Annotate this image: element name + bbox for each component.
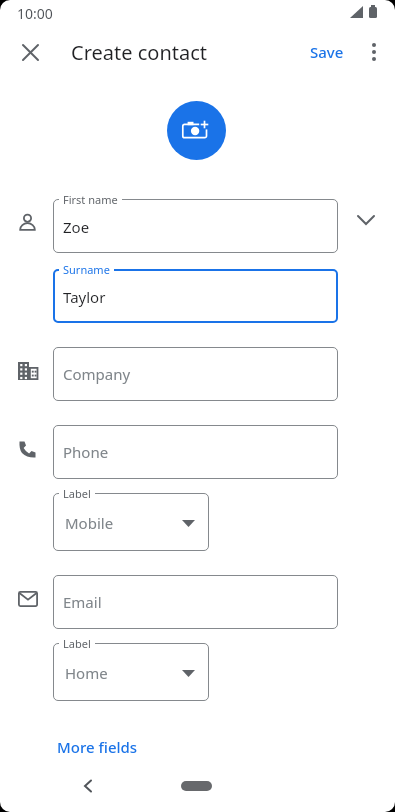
- button[interactable]: [72, 771, 102, 801]
- button[interactable]: [181, 781, 212, 791]
- staticText: Save: [310, 42, 344, 62]
- button[interactable]: [53, 269, 338, 323]
- button[interactable]: [14, 36, 46, 68]
- staticText: Zoe: [63, 217, 90, 237]
- staticText: First name: [63, 192, 118, 207]
- staticText: Create contact: [71, 39, 208, 66]
- staticText: Taylor: [63, 287, 106, 307]
- staticText: Company: [63, 364, 131, 384]
- button[interactable]: [53, 643, 209, 701]
- button[interactable]: [53, 199, 338, 253]
- staticText: Mobile: [65, 513, 114, 533]
- staticText: Email: [63, 592, 102, 612]
- staticText: More fields: [57, 737, 138, 757]
- staticText: Label: [63, 486, 91, 501]
- staticText: Surname: [63, 262, 110, 277]
- button[interactable]: [351, 205, 381, 235]
- button[interactable]: More fields: [0, 0, 81, 40]
- button[interactable]: [167, 101, 226, 160]
- staticText: Home: [65, 663, 108, 683]
- button[interactable]: [53, 575, 338, 629]
- staticText: Label: [63, 636, 91, 651]
- staticText: Phone: [63, 442, 109, 462]
- staticText: 10:00: [17, 4, 53, 23]
- button[interactable]: Save: [300, 36, 354, 68]
- button[interactable]: [358, 36, 390, 68]
- button[interactable]: [53, 493, 209, 551]
- button[interactable]: [53, 425, 338, 479]
- button[interactable]: [53, 347, 338, 401]
